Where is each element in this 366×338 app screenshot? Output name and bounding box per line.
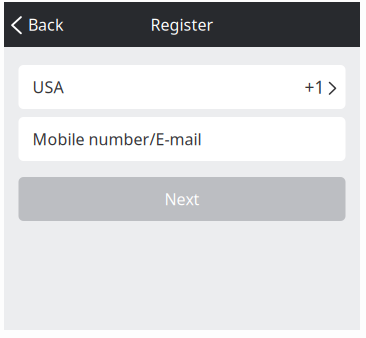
staticText: Register: [150, 14, 213, 35]
button[interactable]: Next: [18, 177, 345, 221]
button[interactable]: Back: [4, 2, 74, 47]
button[interactable]: USA: [18, 65, 345, 109]
staticText: +1: [304, 75, 324, 98]
button[interactable]: Mobile number/E-mail: [18, 117, 345, 161]
staticText: USA: [32, 76, 63, 98]
staticText: Back: [28, 14, 64, 35]
staticText: Mobile number/E-mail: [32, 128, 201, 150]
staticText: Next: [164, 188, 199, 210]
